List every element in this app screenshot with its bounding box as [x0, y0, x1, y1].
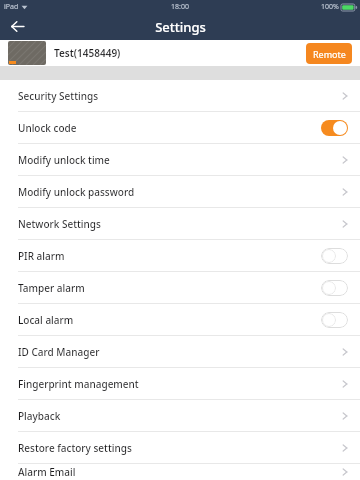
- button[interactable]: Unlock code: [0, 112, 360, 143]
- button[interactable]: Remote: [306, 43, 352, 64]
- button[interactable]: Local alarm: [0, 304, 360, 335]
- staticText: Alarm Email: [18, 465, 76, 479]
- button[interactable]: Fingerprint management: [0, 368, 360, 399]
- staticText: Restore factory settings: [18, 441, 132, 455]
- button[interactable]: Security Settings: [0, 80, 360, 111]
- button[interactable]: Alarm Email: [0, 464, 360, 480]
- button[interactable]: Playback: [0, 400, 360, 431]
- staticText: 18:00: [171, 2, 189, 12]
- button[interactable]: Modify unlock time: [0, 144, 360, 175]
- staticText: Security Settings: [18, 89, 98, 103]
- staticText: Unlock code: [18, 121, 77, 135]
- staticText: 100%: [321, 2, 339, 12]
- staticText: Modify unlock password: [18, 185, 135, 199]
- button[interactable]: Tamper alarm: [0, 272, 360, 303]
- button[interactable]: PIR alarm: [0, 240, 360, 271]
- button[interactable]: Back: [0, 13, 34, 40]
- staticText: Fingerprint management: [18, 377, 139, 391]
- button[interactable]: Network Settings: [0, 208, 360, 239]
- staticText: Settings: [155, 18, 206, 36]
- button[interactable]: ID Card Manager: [0, 336, 360, 367]
- button[interactable]: Modify unlock password: [0, 176, 360, 207]
- staticText: Playback: [18, 409, 61, 423]
- button[interactable]: Restore factory settings: [0, 432, 360, 463]
- staticText: ID Card Manager: [18, 345, 100, 359]
- button[interactable]: Toggle on: [321, 120, 348, 136]
- staticText: Local alarm: [18, 313, 74, 327]
- staticText: Tamper alarm: [18, 281, 85, 295]
- staticText: PIR alarm: [18, 249, 65, 263]
- staticText: Modify unlock time: [18, 153, 110, 167]
- button[interactable]: Toggle off: [321, 248, 348, 264]
- button[interactable]: Toggle off: [321, 312, 348, 328]
- staticText: Remote: [313, 48, 346, 60]
- button[interactable]: Test(1458449): [0, 40, 360, 66]
- staticText: Network Settings: [18, 217, 101, 231]
- staticText: iPad: [4, 2, 19, 12]
- staticText: Test(1458449): [54, 46, 121, 60]
- button[interactable]: Toggle off: [321, 280, 348, 296]
